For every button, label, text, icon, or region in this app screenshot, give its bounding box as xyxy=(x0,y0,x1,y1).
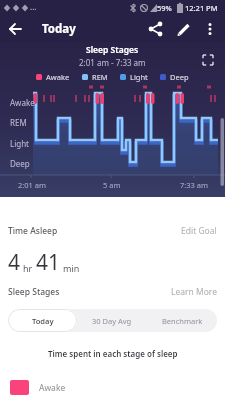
staticText: Deep xyxy=(170,72,189,82)
button[interactable] xyxy=(146,18,168,40)
staticText: Today xyxy=(42,21,76,37)
staticText: 12:21 PM xyxy=(185,3,218,13)
staticText: Sleep Stages xyxy=(86,44,139,56)
staticText: 7:33 am xyxy=(180,180,209,190)
button[interactable]: Learn More xyxy=(171,286,217,298)
staticText: Awake xyxy=(39,382,66,394)
staticText: Today xyxy=(32,316,54,326)
staticText: 41 xyxy=(36,248,61,277)
staticText: hr xyxy=(23,262,33,274)
staticText: Deep xyxy=(10,158,30,169)
staticText: 2:01 am xyxy=(18,180,47,190)
staticText: Awake xyxy=(46,72,70,82)
staticText: ... xyxy=(30,1,37,12)
staticText: Benchmark xyxy=(162,316,203,326)
staticText: Awake xyxy=(10,97,35,108)
button[interactable] xyxy=(174,18,196,40)
button[interactable] xyxy=(199,51,217,69)
staticText: 59% xyxy=(157,3,172,13)
staticText: Light xyxy=(130,72,148,82)
button[interactable]: Today xyxy=(8,309,77,332)
staticText: 4 xyxy=(8,248,21,277)
button[interactable]: Benchmark xyxy=(147,309,217,332)
staticText: min xyxy=(63,262,80,274)
staticText: REM xyxy=(10,117,27,128)
button[interactable] xyxy=(200,18,222,40)
staticText: Time spent in each stage of sleep xyxy=(48,348,178,359)
staticText: Time Asleep xyxy=(8,225,58,237)
staticText: 30 Day Avg xyxy=(92,316,132,326)
staticText: REM xyxy=(92,72,108,82)
button[interactable]: 30 Day Avg xyxy=(77,309,147,332)
button[interactable] xyxy=(6,18,30,42)
button[interactable]: Edit Goal xyxy=(181,225,217,237)
button[interactable]: Awake xyxy=(10,380,66,395)
staticText: Light xyxy=(10,138,30,149)
staticText: 2:01 am - 7:33 am xyxy=(79,57,146,68)
staticText: 5 am xyxy=(103,180,121,190)
staticText: Sleep Stages xyxy=(8,286,60,298)
